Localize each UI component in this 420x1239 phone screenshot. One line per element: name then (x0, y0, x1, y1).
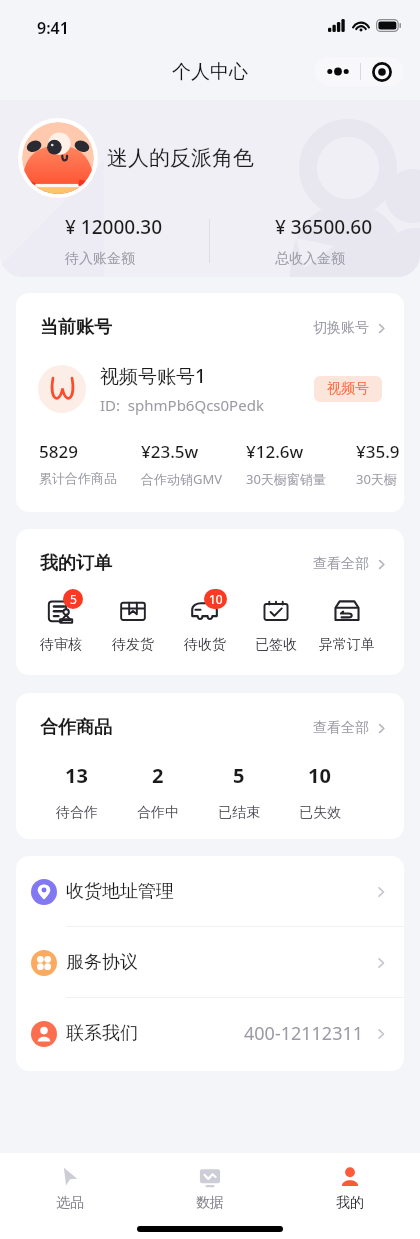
staticText: 查看全部 (313, 719, 369, 737)
staticText: 视频号账号1 (100, 363, 206, 389)
button[interactable]: 联系我们 (16, 998, 404, 1069)
staticText: 异常订单 (319, 636, 375, 654)
staticText: 数据 (196, 1194, 224, 1212)
button[interactable]: 5 (198, 762, 279, 822)
button[interactable]: 异常订单 (311, 589, 382, 654)
button[interactable]: 服务协议 (16, 927, 404, 998)
button[interactable]: 5 (25, 589, 97, 654)
staticText: 5829 (39, 440, 78, 463)
staticText: 迷人的反派角色 (107, 145, 254, 171)
staticText: 30天橱窗销量 (246, 470, 326, 488)
staticText: ¥ 36500.60 (275, 214, 373, 240)
staticText: 我的 (336, 1194, 364, 1212)
button[interactable]: 10 (169, 589, 240, 654)
staticText: 400-12112311 (244, 1021, 364, 1046)
staticText: 我的订单 (40, 552, 112, 575)
button[interactable]: 收货地址管理 (16, 856, 404, 927)
button[interactable]: 数据 (140, 1153, 280, 1219)
staticText: 30天橱窗销量 (356, 470, 404, 488)
staticText: 待入账金额 (65, 250, 135, 268)
staticText: 待审核 (40, 636, 82, 654)
staticText: ¥12.6w (246, 440, 304, 463)
button[interactable]: 切换账号 (313, 319, 388, 337)
button[interactable]: 查看全部 (313, 719, 388, 737)
staticText: 查看全部 (313, 555, 369, 573)
staticText: 当前账号 (40, 316, 112, 339)
button[interactable]: 选品 (0, 1153, 140, 1219)
button[interactable]: 10 (279, 762, 360, 822)
staticText: 合作商品 (40, 716, 112, 739)
staticText: 累计合作商品 (39, 470, 117, 486)
staticText: 收货地址管理 (66, 880, 174, 903)
staticText: 切换账号 (313, 319, 369, 337)
staticText: 5 (233, 762, 245, 789)
staticText: 10 (209, 591, 223, 607)
staticText: 已失效 (299, 804, 341, 822)
staticText: 选品 (56, 1194, 84, 1212)
staticText: ¥23.5w (141, 440, 199, 463)
button[interactable]: Mini program menu (315, 57, 404, 86)
button[interactable]: 已签收 (240, 589, 311, 654)
staticText: 已签收 (255, 636, 297, 654)
staticText: 合作动销GMV (141, 470, 223, 488)
staticText: 待合作 (56, 804, 98, 822)
staticText: 服务协议 (66, 951, 138, 974)
staticText: 待收货 (184, 636, 226, 654)
staticText: ID: sphmPb6Qcs0Pedk (100, 395, 264, 415)
staticText: 5 (70, 591, 77, 607)
button[interactable]: 待发货 (97, 589, 169, 654)
staticText: ¥35.9w (356, 440, 404, 463)
staticText: 联系我们 (66, 1022, 138, 1045)
staticText: 合作中 (137, 804, 179, 822)
staticText: 个人中心 (172, 60, 248, 84)
staticText: ¥ 12000.30 (65, 214, 163, 240)
button[interactable]: 2 (117, 762, 198, 822)
staticText: 13 (65, 762, 88, 789)
staticText: 已结束 (218, 804, 260, 822)
staticText: 总收入金额 (275, 250, 345, 268)
staticText: 视频号 (327, 380, 369, 398)
staticText: 9:41 (37, 17, 69, 39)
button[interactable]: 查看全部 (313, 555, 388, 573)
staticText: 2 (152, 762, 164, 789)
staticText: 10 (308, 762, 331, 789)
button[interactable]: 我的 (280, 1153, 420, 1219)
staticText: 待发货 (112, 636, 154, 654)
button[interactable]: 13 (36, 762, 117, 822)
